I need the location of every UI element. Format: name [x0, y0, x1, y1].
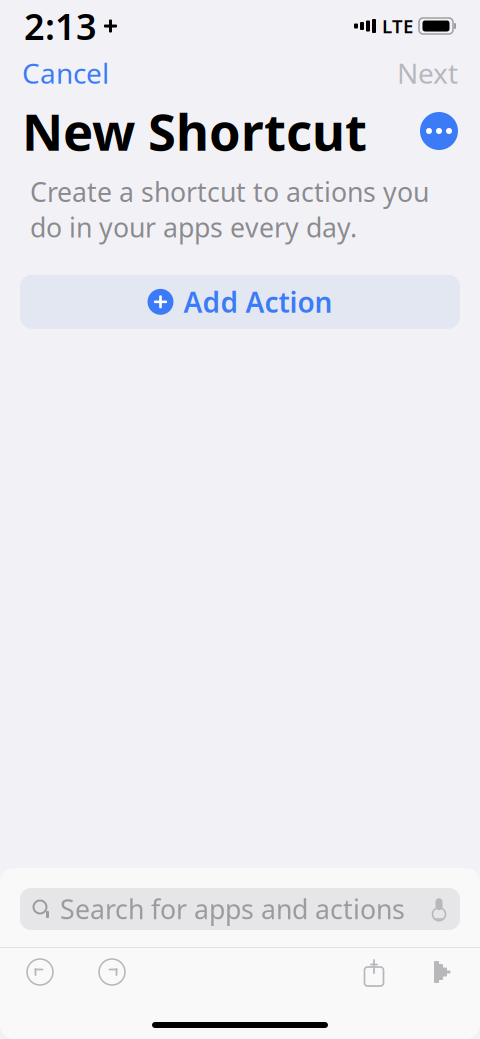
button[interactable]: Search for apps and actions: [20, 888, 460, 930]
button[interactable]: Share: [338, 949, 410, 995]
button[interactable]: More options: [420, 112, 458, 150]
staticText: New Shortcut: [22, 97, 367, 165]
staticText: Next: [397, 54, 458, 92]
staticText: Cancel: [22, 54, 109, 92]
staticText: 2:13: [24, 2, 97, 50]
button[interactable]: Run shortcut: [410, 949, 476, 995]
staticText: LTE: [382, 14, 413, 38]
button[interactable]: Cancel: [0, 46, 131, 100]
button[interactable]: Redo: [76, 949, 148, 995]
button[interactable]: Undo: [4, 949, 76, 995]
button[interactable]: Add Action: [20, 275, 460, 329]
button[interactable]: Next: [375, 46, 480, 100]
staticText: Add Action: [183, 283, 332, 320]
staticText: Create a shortcut to actions you do in y…: [30, 174, 429, 245]
staticText: Search for apps and actions: [60, 891, 405, 927]
